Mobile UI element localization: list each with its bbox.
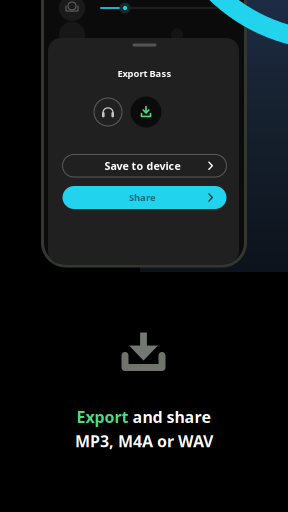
- staticText: Share: [129, 191, 156, 204]
- staticText: Export: [76, 406, 128, 427]
- staticText: Export Bass: [117, 67, 171, 80]
- button[interactable]: Save to device: [62, 154, 226, 177]
- staticText: MP3, M4A or WAV: [75, 430, 213, 452]
- button[interactable]: Download: [129, 95, 162, 128]
- button[interactable]: Preview: [93, 97, 123, 127]
- button[interactable]: Share: [62, 186, 226, 209]
- staticText: Save to device: [104, 159, 180, 173]
- staticText: and share: [128, 406, 211, 427]
